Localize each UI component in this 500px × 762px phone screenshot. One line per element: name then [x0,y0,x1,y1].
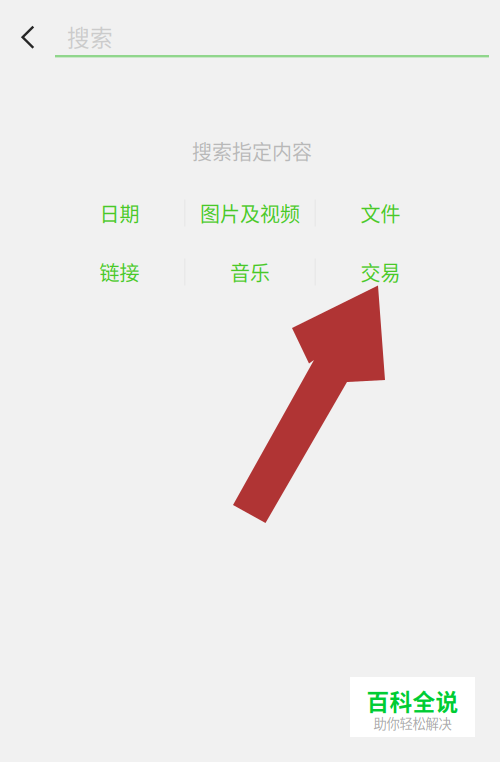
staticText: 链接 [99,257,139,286]
staticText: 文件 [360,198,400,227]
button[interactable]: 日期 [55,191,184,235]
button[interactable]: 返回 [0,0,55,58]
staticText: 百科全说 [366,684,458,717]
button[interactable]: 图片及视频 [185,191,314,235]
staticText: 图片及视频 [200,198,300,227]
button[interactable]: 文件 [316,191,445,235]
button[interactable]: 音乐 [185,250,314,294]
button[interactable]: 交易 [316,250,445,294]
staticText: 交易 [360,257,400,286]
staticText: 搜索指定内容 [192,136,312,165]
staticText: 搜索 [67,20,113,53]
button[interactable]: 链接 [55,250,184,294]
staticText: 日期 [99,198,139,227]
staticText: 助你轻松解决 [373,713,451,733]
button[interactable]: 搜索 [55,0,489,58]
staticText: 音乐 [230,257,270,286]
